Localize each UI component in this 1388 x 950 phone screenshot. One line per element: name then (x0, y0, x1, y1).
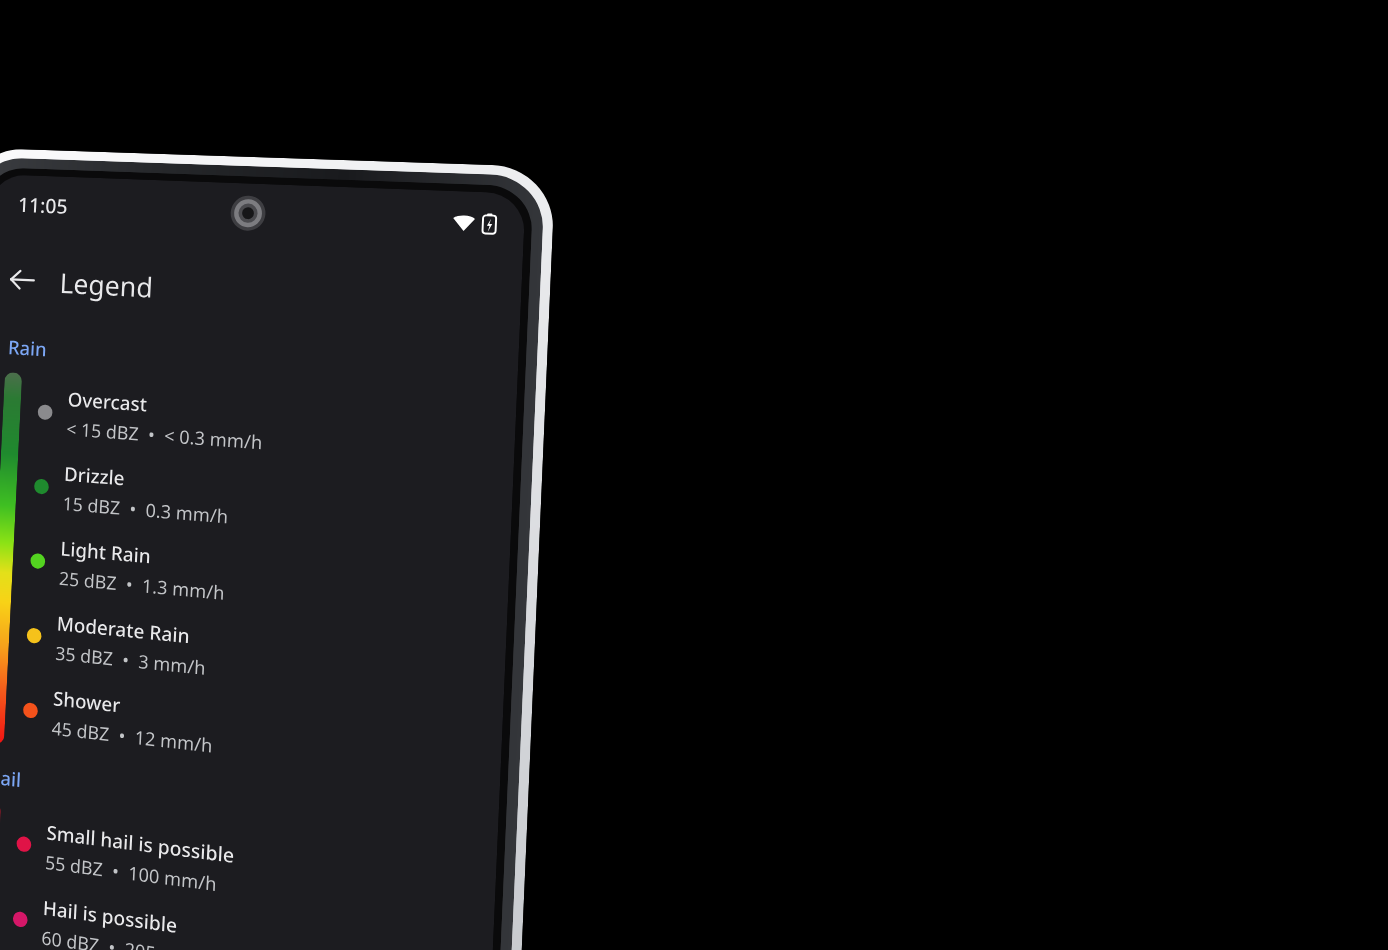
staticText: 15 dBZ • 0.3 mm/h (62, 491, 229, 530)
staticText: 25 dBZ • 1.3 mm/h (58, 565, 226, 606)
staticText: Drizzle (63, 461, 126, 492)
staticText: Hail (0, 763, 22, 793)
staticText: Shower (52, 685, 121, 719)
staticText: Overcast (67, 386, 148, 418)
staticText: Light Rain (60, 535, 152, 569)
staticText: 35 dBZ • 3 mm/h (55, 640, 207, 681)
button[interactable]: Moderate Rain (25, 597, 506, 721)
button[interactable]: Back (0, 253, 48, 307)
button[interactable]: Drizzle (32, 448, 513, 562)
button[interactable]: Overcast (36, 374, 517, 483)
button[interactable]: Shower (21, 672, 503, 801)
staticText: Moderate Rain (56, 610, 191, 649)
staticText: 11:05 (17, 191, 69, 220)
staticText: Rain (7, 334, 47, 362)
staticText: 55 dBZ • 100 mm/h (45, 849, 217, 897)
staticText: < 15 dBZ • < 0.3 mm/h (66, 416, 264, 456)
staticText: Hail is possible (42, 894, 178, 939)
staticText: Legend (59, 264, 154, 306)
staticText: 60 dBZ • 205 mm/h (41, 925, 214, 950)
button[interactable]: Light Rain (29, 523, 510, 642)
button[interactable]: Hail is possible (11, 880, 493, 950)
staticText: Small hail is possible (46, 819, 235, 869)
button[interactable]: Small hail is possible (15, 805, 497, 943)
staticText: 45 dBZ • 12 mm/h (51, 715, 213, 759)
